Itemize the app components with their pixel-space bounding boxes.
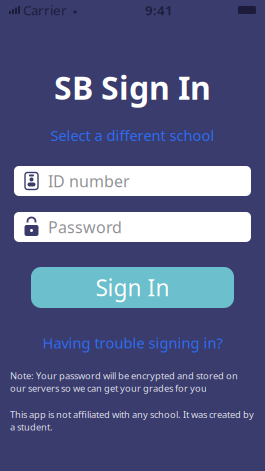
button[interactable]: Select a different school (44, 122, 220, 148)
staticText: Select a different school (50, 125, 214, 145)
staticText: Sign In (95, 272, 169, 302)
staticText: SB Sign In (54, 66, 211, 108)
staticText: 9:41 (145, 1, 173, 19)
staticText: Note: Your password will be encrypted an… (10, 369, 238, 394)
button[interactable]: ID number (14, 166, 251, 196)
staticText: This app is not affiliated with any scho… (10, 408, 254, 433)
button[interactable]: Password (14, 212, 251, 242)
staticText: Password (48, 216, 122, 237)
button[interactable]: Having trouble signing in? (36, 330, 228, 355)
staticText: Carrier (23, 1, 67, 19)
staticText: ID number (48, 170, 130, 191)
button[interactable]: Sign In (31, 267, 234, 308)
staticText: Having trouble signing in? (42, 333, 222, 352)
